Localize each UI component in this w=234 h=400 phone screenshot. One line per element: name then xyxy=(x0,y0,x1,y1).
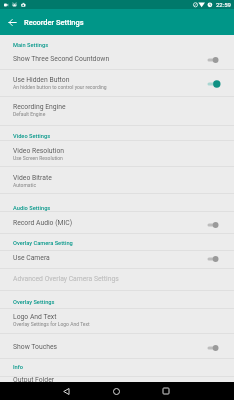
staticText: Info xyxy=(13,364,24,371)
staticText: Logo And Text xyxy=(13,313,57,321)
button[interactable]: Toggle on xyxy=(201,76,223,92)
staticText: Automatic xyxy=(13,182,37,188)
button[interactable]: Toggle off xyxy=(201,340,223,356)
staticText: Video Settings xyxy=(13,133,51,140)
staticText: Record Audio (MIC) xyxy=(13,219,72,227)
staticText: Overlay Camera Setting xyxy=(13,240,73,247)
staticText: Use Camera xyxy=(13,254,50,262)
staticText: Video Resolution xyxy=(13,147,65,155)
button[interactable] xyxy=(0,358,234,376)
staticText: Audio Settings xyxy=(13,205,51,212)
button[interactable] xyxy=(0,69,234,96)
button[interactable] xyxy=(0,125,234,140)
button[interactable]: Back xyxy=(57,382,75,400)
staticText: Recording Engine xyxy=(13,103,66,111)
staticText: Advanced Overlay Camera Settings xyxy=(13,275,119,283)
staticText: Use Screen Resolution xyxy=(13,155,63,161)
button[interactable] xyxy=(0,34,234,69)
button[interactable] xyxy=(0,376,234,382)
staticText: Show Touches xyxy=(13,343,58,351)
button[interactable] xyxy=(0,211,234,233)
button[interactable]: Toggle off xyxy=(201,217,223,233)
button[interactable]: Toggle off xyxy=(201,52,223,68)
staticText: Show Three Second Countdown xyxy=(13,55,110,63)
button[interactable] xyxy=(0,193,234,211)
staticText: 22:59 xyxy=(216,1,231,8)
staticText: Use Hidden Button xyxy=(13,76,70,84)
button[interactable] xyxy=(0,233,234,250)
staticText: Overlay Settings xyxy=(13,299,55,306)
staticText: Recorder Settings xyxy=(24,18,84,27)
button[interactable]: Navigate up xyxy=(3,13,22,32)
button[interactable]: Home xyxy=(107,382,125,400)
button[interactable] xyxy=(0,140,234,166)
staticText: Overlay Settings for Logo And Text xyxy=(13,321,90,327)
staticText: An hidden button to control your recordi… xyxy=(13,84,107,90)
button[interactable] xyxy=(0,96,234,126)
button[interactable] xyxy=(0,268,234,290)
staticText: Video Bitrate xyxy=(13,174,52,182)
button[interactable] xyxy=(0,333,234,359)
button[interactable] xyxy=(0,290,234,309)
button[interactable]: Toggle off xyxy=(201,251,223,267)
button[interactable] xyxy=(0,166,234,193)
button[interactable] xyxy=(0,308,234,333)
button[interactable]: Recent apps xyxy=(157,382,175,400)
button[interactable] xyxy=(0,250,234,268)
staticText: Default Engine xyxy=(13,111,46,117)
staticText: Output Folder xyxy=(13,376,55,384)
staticText: Main Settings xyxy=(13,42,49,49)
